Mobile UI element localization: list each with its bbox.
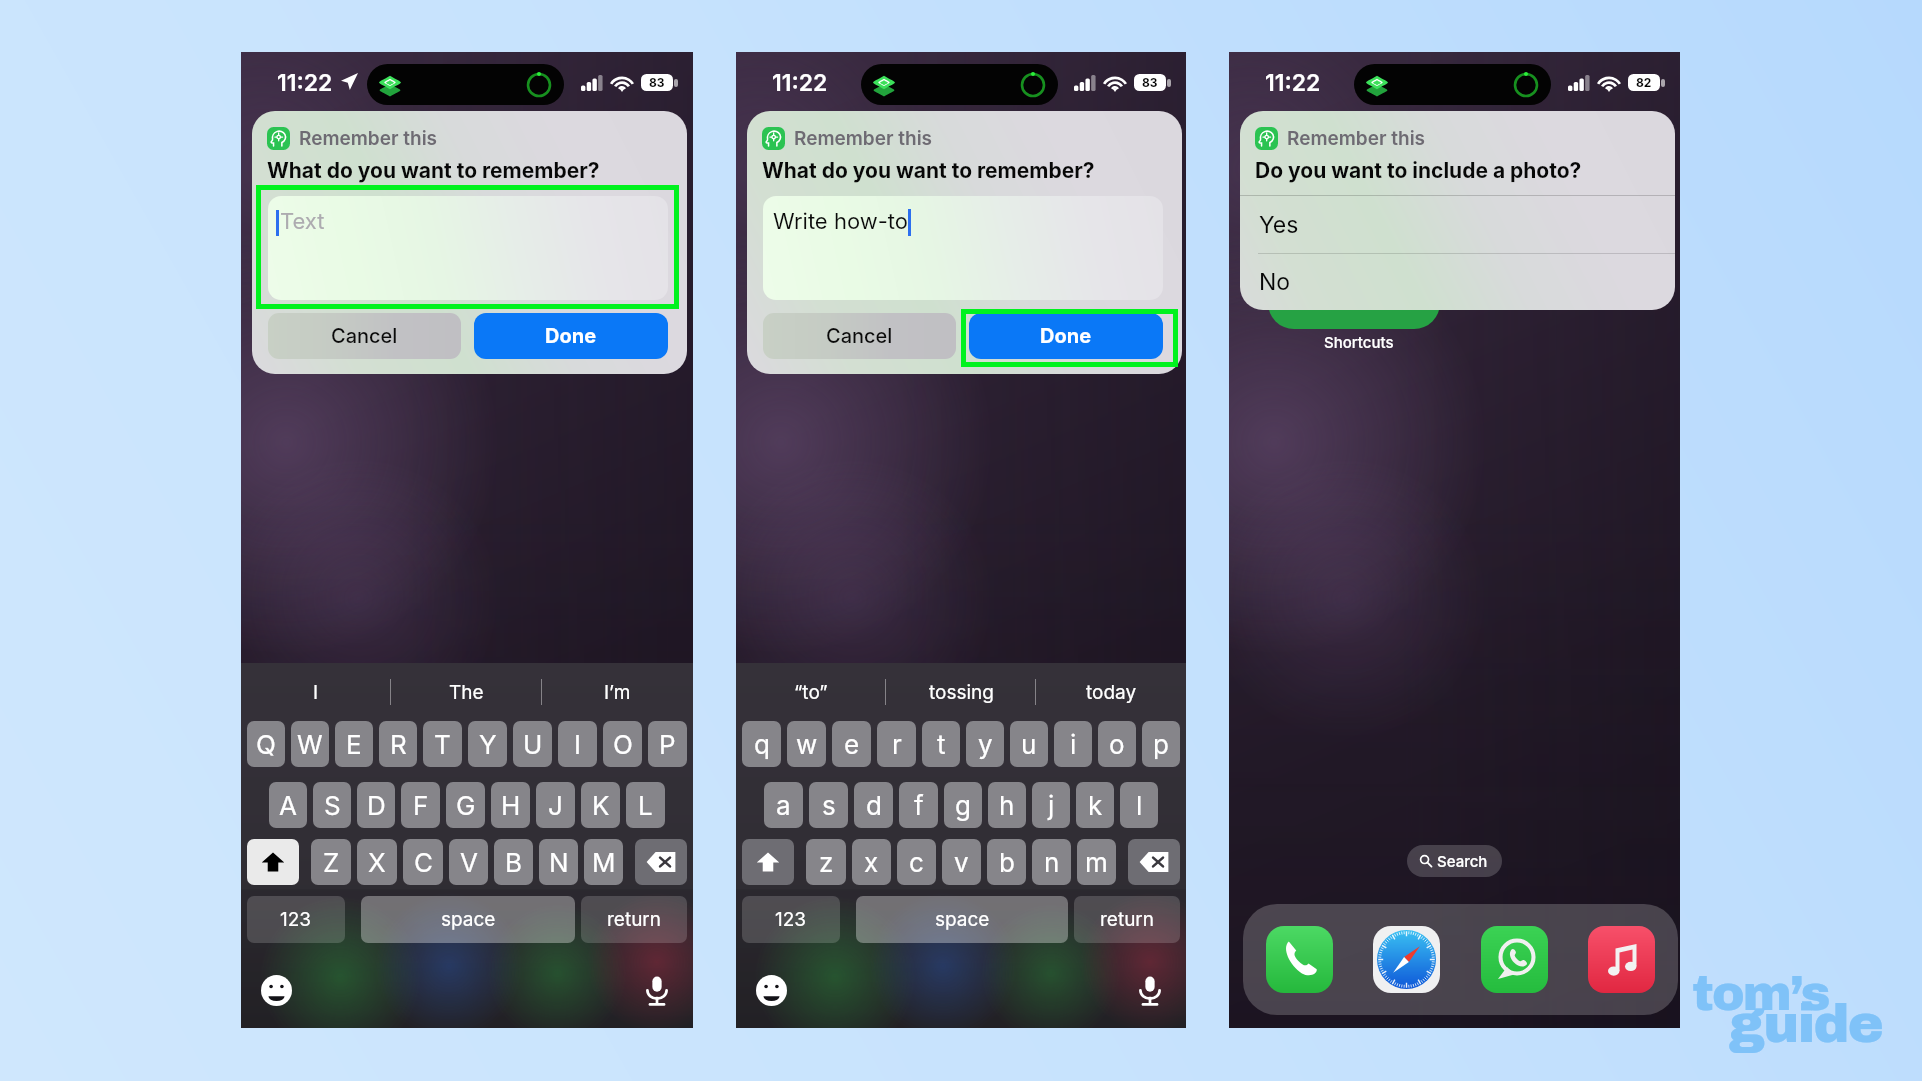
button[interactable]: Shortcuts bbox=[1268, 252, 1440, 329]
button[interactable]: j bbox=[1032, 782, 1070, 828]
button[interactable]: Dictation bbox=[1134, 975, 1166, 1007]
button[interactable]: Done bbox=[969, 313, 1163, 359]
button[interactable]: 123 bbox=[247, 896, 345, 943]
button[interactable]: “to” bbox=[736, 663, 886, 721]
button[interactable]: q bbox=[742, 721, 781, 767]
button[interactable]: K bbox=[581, 782, 620, 828]
button[interactable]: E bbox=[335, 721, 373, 767]
staticText: Remember this bbox=[1287, 127, 1426, 150]
button[interactable]: P bbox=[648, 721, 687, 767]
button[interactable]: No bbox=[1240, 254, 1675, 310]
staticText: guide bbox=[1729, 995, 1883, 1054]
button[interactable]: Backspace bbox=[635, 839, 687, 885]
button[interactable]: Emoji keyboard bbox=[756, 975, 787, 1006]
button[interactable]: w bbox=[787, 721, 826, 767]
button[interactable]: n bbox=[1032, 839, 1071, 885]
button[interactable]: y bbox=[966, 721, 1004, 767]
button[interactable]: Text bbox=[268, 196, 668, 300]
button[interactable]: O bbox=[603, 721, 642, 767]
button[interactable]: Shift bbox=[247, 839, 299, 885]
button[interactable]: F bbox=[401, 782, 440, 828]
button[interactable]: o bbox=[1098, 721, 1136, 767]
button[interactable]: Z bbox=[311, 839, 351, 885]
button[interactable]: B bbox=[494, 839, 533, 885]
button[interactable]: Backspace bbox=[1128, 839, 1180, 885]
button[interactable]: A bbox=[269, 782, 307, 828]
button[interactable]: tossing bbox=[886, 663, 1036, 721]
staticText: tossing bbox=[929, 681, 994, 704]
button[interactable]: Q bbox=[247, 721, 285, 767]
button[interactable]: f bbox=[899, 782, 938, 828]
button[interactable]: C bbox=[403, 839, 443, 885]
button[interactable]: I bbox=[558, 721, 597, 767]
button[interactable]: Cancel bbox=[268, 313, 461, 359]
button[interactable]: Emoji keyboard bbox=[261, 975, 292, 1006]
button[interactable]: return bbox=[581, 896, 687, 943]
button[interactable]: Dictation bbox=[641, 975, 673, 1007]
button[interactable]: Phone bbox=[1266, 926, 1333, 993]
button[interactable]: u bbox=[1010, 721, 1048, 767]
staticText: e bbox=[844, 729, 860, 760]
button[interactable]: I’m bbox=[542, 663, 693, 721]
button[interactable]: S bbox=[313, 782, 351, 828]
button[interactable]: x bbox=[852, 839, 891, 885]
staticText: “to” bbox=[794, 681, 828, 704]
button[interactable]: Done bbox=[474, 313, 668, 359]
button[interactable]: 123 bbox=[742, 896, 840, 943]
button[interactable]: z bbox=[806, 839, 846, 885]
button[interactable]: WhatsApp bbox=[1481, 926, 1548, 993]
button[interactable]: t bbox=[922, 721, 960, 767]
button[interactable]: The bbox=[391, 663, 542, 721]
button[interactable]: J bbox=[536, 782, 575, 828]
button[interactable]: return bbox=[1074, 896, 1180, 943]
button[interactable]: D bbox=[357, 782, 395, 828]
staticText: Shortcuts bbox=[1324, 333, 1394, 351]
button[interactable]: H bbox=[491, 782, 530, 828]
button[interactable]: g bbox=[944, 782, 982, 828]
button[interactable]: b bbox=[987, 839, 1026, 885]
staticText: s bbox=[822, 790, 836, 821]
button[interactable]: h bbox=[988, 782, 1026, 828]
staticText: S bbox=[324, 790, 341, 821]
button[interactable]: s bbox=[809, 782, 848, 828]
button[interactable]: c bbox=[897, 839, 936, 885]
button[interactable]: r bbox=[877, 721, 916, 767]
staticText: l bbox=[1136, 790, 1143, 821]
button[interactable]: i bbox=[1054, 721, 1092, 767]
staticText: j bbox=[1048, 790, 1055, 821]
button[interactable]: R bbox=[379, 721, 417, 767]
button[interactable]: T bbox=[423, 721, 462, 767]
button[interactable]: k bbox=[1076, 782, 1114, 828]
button[interactable]: a bbox=[764, 782, 803, 828]
staticText: Do you want to include a photo? bbox=[1255, 158, 1582, 183]
button[interactable]: l bbox=[1120, 782, 1158, 828]
button[interactable]: e bbox=[832, 721, 871, 767]
button[interactable]: I bbox=[241, 663, 391, 721]
staticText: 83 bbox=[1142, 75, 1158, 90]
button[interactable]: today bbox=[1036, 663, 1186, 721]
button[interactable]: Safari bbox=[1373, 926, 1440, 993]
button[interactable]: space bbox=[856, 896, 1068, 943]
button[interactable]: V bbox=[449, 839, 488, 885]
button[interactable]: Write how-to bbox=[763, 196, 1163, 300]
button[interactable]: v bbox=[942, 839, 981, 885]
button[interactable]: N bbox=[539, 839, 578, 885]
button[interactable]: X bbox=[357, 839, 397, 885]
button[interactable]: U bbox=[513, 721, 552, 767]
staticText: No bbox=[1259, 268, 1291, 296]
button[interactable]: Music bbox=[1588, 926, 1655, 993]
button[interactable]: space bbox=[361, 896, 575, 943]
staticText: u bbox=[1021, 729, 1037, 760]
button[interactable]: Yes bbox=[1240, 196, 1675, 253]
button[interactable]: W bbox=[291, 721, 329, 767]
button[interactable]: Search bbox=[1407, 845, 1502, 877]
button[interactable]: L bbox=[626, 782, 665, 828]
button[interactable]: m bbox=[1077, 839, 1116, 885]
button[interactable]: G bbox=[446, 782, 485, 828]
button[interactable]: Shift bbox=[742, 839, 794, 885]
button[interactable]: d bbox=[854, 782, 893, 828]
button[interactable]: p bbox=[1142, 721, 1180, 767]
button[interactable]: M bbox=[584, 839, 623, 885]
button[interactable]: Cancel bbox=[763, 313, 956, 359]
button[interactable]: Y bbox=[468, 721, 507, 767]
